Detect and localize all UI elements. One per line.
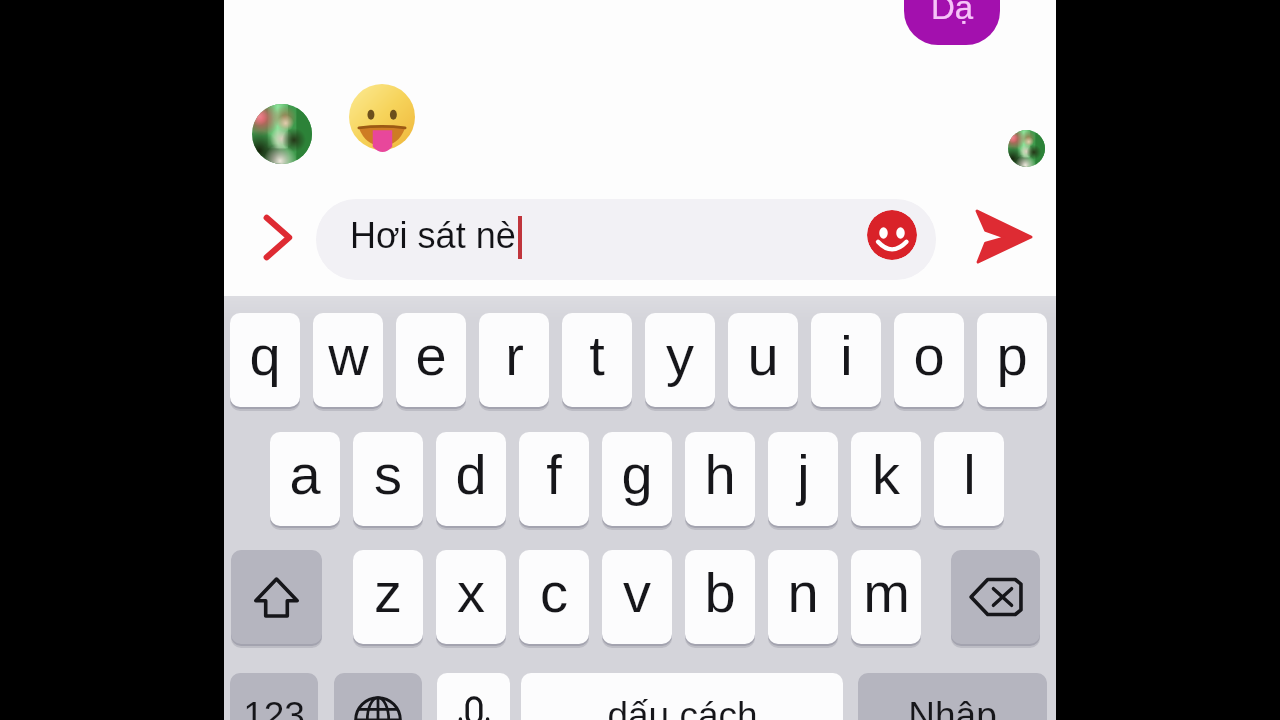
button[interactable]: Hơi sát nè bbox=[316, 199, 936, 280]
button[interactable]: i bbox=[811, 313, 881, 411]
staticText: p bbox=[996, 324, 1028, 387]
button[interactable]: Attachments bbox=[244, 204, 310, 270]
button[interactable]: z bbox=[353, 550, 423, 648]
staticText: f bbox=[546, 443, 562, 506]
button[interactable]: Dạ bbox=[904, 0, 1000, 45]
button[interactable]: m bbox=[851, 550, 921, 648]
button[interactable]: o bbox=[894, 313, 964, 411]
button[interactable]: d bbox=[436, 432, 506, 530]
staticText: k bbox=[872, 443, 900, 506]
button[interactable]: Shift bbox=[231, 550, 322, 648]
button[interactable]: e bbox=[396, 313, 466, 411]
staticText: v bbox=[623, 561, 651, 624]
staticText: d bbox=[455, 443, 487, 506]
staticText: dấu cách bbox=[607, 695, 758, 720]
button[interactable]: c bbox=[519, 550, 589, 648]
staticText: Nhập bbox=[908, 695, 997, 720]
button[interactable]: Switch language bbox=[334, 673, 422, 720]
staticText: e bbox=[415, 324, 447, 387]
staticText: r bbox=[505, 324, 524, 387]
staticText: c bbox=[540, 561, 568, 624]
staticText: n bbox=[787, 561, 819, 624]
staticText: Hơi sát nè bbox=[350, 215, 516, 255]
button[interactable]: t bbox=[562, 313, 632, 411]
button[interactable]: a bbox=[270, 432, 340, 530]
button[interactable]: q bbox=[230, 313, 300, 411]
staticText: u bbox=[747, 324, 779, 387]
staticText: g bbox=[621, 443, 653, 506]
button[interactable]: x bbox=[436, 550, 506, 648]
staticText: t bbox=[589, 324, 605, 387]
staticText: i bbox=[840, 324, 853, 387]
staticText: z bbox=[374, 561, 402, 624]
button[interactable]: 123 bbox=[230, 673, 318, 720]
button[interactable]: Voice input bbox=[437, 673, 510, 720]
button[interactable]: dấu cách bbox=[521, 673, 843, 720]
button[interactable]: n bbox=[768, 550, 838, 648]
button[interactable]: l bbox=[934, 432, 1004, 530]
staticText: a bbox=[289, 443, 321, 506]
button[interactable]: Emoji bbox=[867, 210, 917, 260]
button[interactable]: y bbox=[645, 313, 715, 411]
button[interactable]: w bbox=[313, 313, 383, 411]
button[interactable]: Send bbox=[961, 193, 1047, 279]
staticText: j bbox=[797, 443, 810, 506]
staticText: m bbox=[863, 561, 910, 624]
staticText: Dạ bbox=[931, 0, 974, 26]
button[interactable]: j bbox=[768, 432, 838, 530]
button[interactable]: k bbox=[851, 432, 921, 530]
button[interactable]: Backspace bbox=[951, 550, 1040, 648]
staticText: w bbox=[328, 324, 369, 387]
staticText: y bbox=[666, 324, 694, 387]
staticText: o bbox=[913, 324, 945, 387]
staticText: q bbox=[249, 324, 281, 387]
button[interactable]: g bbox=[602, 432, 672, 530]
button[interactable]: v bbox=[602, 550, 672, 648]
button[interactable]: f bbox=[519, 432, 589, 530]
button[interactable]: u bbox=[728, 313, 798, 411]
staticText: s bbox=[374, 443, 402, 506]
button[interactable]: Nhập bbox=[858, 673, 1047, 720]
button[interactable]: s bbox=[353, 432, 423, 530]
staticText: h bbox=[704, 443, 736, 506]
staticText: x bbox=[457, 561, 485, 624]
button[interactable]: b bbox=[685, 550, 755, 648]
staticText: 123 bbox=[243, 695, 305, 720]
button[interactable]: r bbox=[479, 313, 549, 411]
staticText: b bbox=[704, 561, 736, 624]
button[interactable]: h bbox=[685, 432, 755, 530]
staticText: l bbox=[963, 443, 976, 506]
button[interactable]: p bbox=[977, 313, 1047, 411]
